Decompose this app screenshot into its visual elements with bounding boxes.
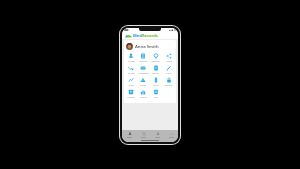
button[interactable]: Reports	[149, 52, 162, 64]
staticText: Alerts	[140, 84, 146, 87]
button[interactable]: Search	[136, 130, 150, 139]
button[interactable]: Lab	[149, 88, 162, 100]
button[interactable]: More	[164, 130, 178, 139]
button[interactable]: Share	[162, 52, 175, 64]
button[interactable]: Anna Smith	[124, 42, 176, 51]
staticText: Share	[166, 60, 172, 63]
staticText: Profile	[128, 60, 135, 63]
button[interactable]: Security	[162, 76, 175, 88]
button[interactable]: Alerts	[137, 76, 149, 88]
button[interactable]: Doctor	[125, 64, 137, 76]
button[interactable]: Upload	[125, 88, 137, 100]
staticText: Notes	[165, 72, 172, 75]
staticText: Vitals	[128, 84, 134, 87]
button[interactable]: Records	[137, 52, 149, 64]
staticText: Meds	[153, 84, 159, 87]
button[interactable]: Charts	[137, 88, 149, 100]
staticText: Billing	[152, 72, 159, 75]
staticText: Security	[164, 84, 173, 87]
staticText: Messages	[138, 72, 149, 75]
button[interactable]: Profile	[150, 130, 164, 139]
staticText: Records	[142, 33, 158, 38]
staticText: Doctor	[128, 72, 135, 75]
button[interactable]: Meds	[149, 76, 162, 88]
staticText: Records	[139, 60, 148, 63]
staticText: Charts	[140, 96, 147, 99]
button[interactable]: Home	[122, 130, 136, 139]
button[interactable]: Vitals	[125, 76, 137, 88]
button[interactable]: Notes	[162, 64, 175, 76]
staticText: Lab	[154, 96, 158, 99]
staticText: Reports	[151, 60, 160, 63]
staticText: Upload	[127, 96, 135, 99]
staticText: Anna Smith	[135, 44, 159, 50]
staticText: Med	[133, 33, 142, 38]
button[interactable]: Profile	[125, 52, 137, 64]
button[interactable]: Billing	[149, 64, 162, 76]
button[interactable]: Messages	[137, 64, 149, 76]
